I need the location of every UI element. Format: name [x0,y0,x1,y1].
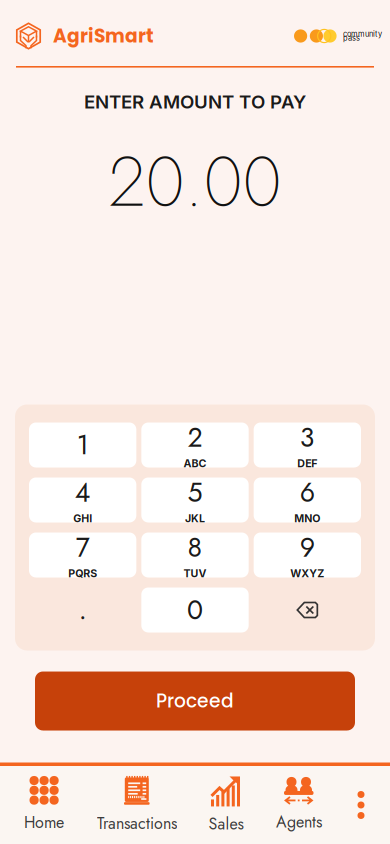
button[interactable]: Delete [254,587,361,632]
button[interactable]: 9 [254,532,361,577]
button[interactable]: Transactions [88,775,186,835]
staticText: JKL [185,512,205,525]
staticText: Home [24,811,64,834]
button[interactable]: 2 [141,422,249,467]
staticText: MNO [294,512,320,525]
staticText: 4 [75,473,91,512]
button[interactable]: Decimal point [29,587,136,632]
staticText: TUV [183,567,206,580]
button[interactable]: 0 [141,587,249,632]
staticText: Transactions [97,812,177,835]
staticText: DEF [297,457,317,470]
staticText: PQRS [68,567,97,580]
staticText: 20.00 [108,131,281,232]
staticText: 2 [187,418,202,457]
staticText: pass [343,33,360,42]
staticText: 1 [77,426,89,464]
staticText: 9 [300,528,315,567]
staticText: WXYZ [290,567,324,580]
staticText: 0 [187,591,203,629]
staticText: community [343,29,382,38]
staticText: Proceed [156,688,234,714]
staticText: Sales [208,812,243,835]
staticText: Agents [276,810,322,833]
staticText: . [79,591,87,629]
staticText: GHI [73,512,92,525]
button[interactable]: 3 [254,422,361,467]
button[interactable]: 5 [141,477,249,522]
button[interactable]: Sales [186,775,266,835]
staticText: 7 [76,528,90,567]
staticText: 3 [300,418,315,457]
button[interactable]: 8 [141,532,249,577]
staticText: ABC [183,457,206,470]
staticText: 8 [187,528,202,567]
button[interactable]: More options [332,775,390,835]
button[interactable]: Agents [266,775,332,835]
button[interactable]: 7 [29,532,136,577]
staticText: ENTER AMOUNT TO PAY [84,90,306,113]
button[interactable]: 1 [29,422,136,467]
button[interactable]: Home [0,775,88,835]
button[interactable]: Proceed [35,671,355,730]
staticText: 6 [300,473,315,512]
button[interactable]: 4 [29,477,136,522]
staticText: 5 [187,473,202,512]
button[interactable]: 6 [254,477,361,522]
staticText: AgriSmart [53,23,154,49]
